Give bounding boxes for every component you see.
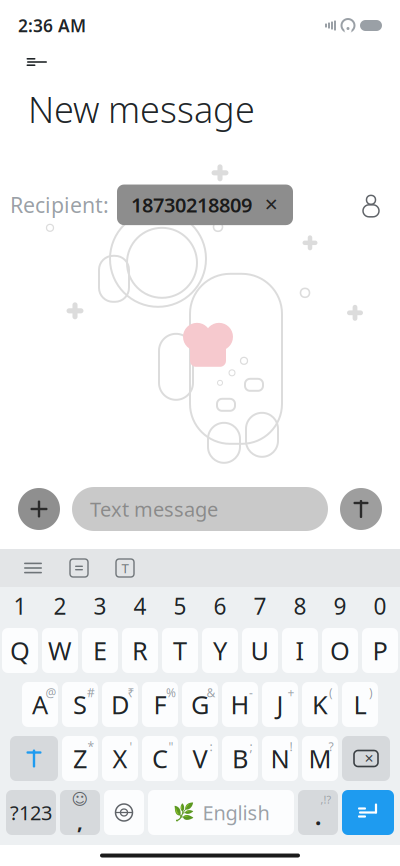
button[interactable]: Add attachment [18,488,60,530]
button[interactable]: H [222,682,258,727]
button[interactable]: W [42,628,78,673]
button[interactable]: B [222,736,258,781]
button[interactable]: E [82,628,118,673]
button[interactable]: Clipboard [66,555,92,581]
button[interactable]: G [182,682,218,727]
button[interactable]: Emoji and comma [60,790,100,835]
staticText: Text message [90,496,218,522]
staticText: . [315,801,321,831]
button[interactable]: 3 [80,593,120,619]
staticText: J [276,688,283,721]
staticText: English [202,799,269,826]
button[interactable]: 1 [0,593,40,619]
button[interactable]: X [102,736,138,781]
button[interactable]: Text settings [112,555,138,581]
staticText: M [308,742,331,775]
staticText: % [166,684,176,700]
staticText: , [77,808,83,835]
button[interactable]: V [182,736,218,781]
staticText: 2:36 AM [18,14,86,37]
button[interactable]: Back [20,45,54,79]
button[interactable]: 4 [120,593,160,619]
button[interactable]: Space [148,790,294,835]
button[interactable]: N [262,736,298,781]
button[interactable]: C [142,736,178,781]
staticText: ? [328,738,333,754]
staticText: 1 [13,591,26,621]
staticText: & [206,684,215,700]
button[interactable]: 5 [160,593,200,619]
staticText: 8 [293,591,306,621]
staticText: V [192,742,207,775]
staticText: T [121,559,128,577]
staticText: Y [213,634,227,667]
button[interactable]: 18730218809 [117,184,293,225]
button[interactable]: Backspace [342,736,390,781]
button[interactable]: P [362,628,398,673]
staticText: 7 [253,591,266,621]
button[interactable]: Change language [104,790,144,835]
button[interactable]: O [322,628,358,673]
button[interactable]: D [102,682,138,727]
button[interactable]: Menu [20,555,46,581]
button[interactable]: Y [202,628,238,673]
staticText: 9 [333,591,346,621]
staticText: ' [129,738,132,754]
button[interactable]: 7 [240,593,280,619]
staticText: ) [369,684,373,700]
staticText: B [232,742,248,775]
staticText: " [168,738,173,754]
staticText: S [73,688,87,721]
staticText: K [312,688,328,721]
staticText: I [295,634,304,667]
button[interactable]: Shift [10,736,58,781]
staticText: 🌿 [172,803,194,822]
staticText: ! [289,738,292,754]
button[interactable]: 0 [360,593,400,619]
staticText: W [48,634,72,667]
button[interactable]: T [162,628,198,673]
staticText: U [250,634,269,667]
button[interactable]: 2 [40,593,80,619]
staticText: - [249,684,253,700]
staticText: + [287,684,294,700]
button[interactable]: L [342,682,378,727]
button[interactable]: A [22,682,58,727]
staticText: ; [249,738,252,754]
staticText: P [372,634,387,667]
button[interactable]: Q [2,628,38,673]
staticText: F [153,688,166,721]
staticText: N [270,742,289,775]
button[interactable]: M [302,736,338,781]
button[interactable]: 6 [200,593,240,619]
button[interactable]: S [62,682,98,727]
button[interactable]: Text message [72,487,328,531]
staticText: ₹ [127,684,134,700]
staticText: T [173,634,187,667]
button[interactable]: U [242,628,278,673]
staticText: L [353,688,366,721]
button[interactable]: 8 [280,593,320,619]
button[interactable]: R [122,628,158,673]
staticText: ✕ [364,752,374,765]
button[interactable]: I [282,628,318,673]
staticText: X [112,742,127,775]
button[interactable]: Choose contact [356,190,386,220]
staticText: @ [45,684,56,700]
staticText: 5 [173,591,186,621]
button[interactable]: F [142,682,178,727]
staticText: : [209,738,212,754]
button[interactable]: K [302,682,338,727]
staticText: 0 [373,591,386,621]
button[interactable]: J [262,682,298,727]
button[interactable]: Period [298,790,338,835]
staticText: Q [10,634,30,667]
button[interactable]: Enter [342,790,394,835]
staticText: * [87,738,94,754]
button[interactable]: 9 [320,593,360,619]
button[interactable]: Z [62,736,98,781]
button[interactable]: ?123 [6,790,56,835]
button[interactable]: Send [340,488,382,530]
staticText: A [32,688,48,721]
staticText: ,!? [320,792,331,807]
